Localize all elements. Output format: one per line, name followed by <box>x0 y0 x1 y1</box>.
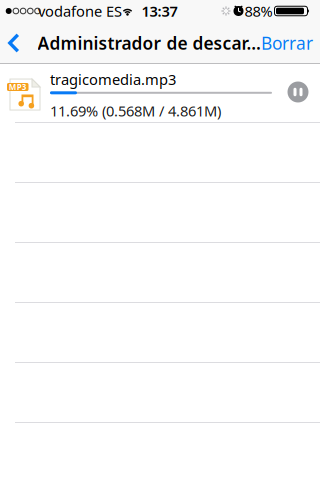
staticText: Borrar <box>261 31 313 54</box>
staticText: Administrador de descar… <box>37 31 260 54</box>
staticText: MP3 <box>9 82 27 92</box>
button[interactable]: Atrás <box>1 25 27 61</box>
staticText: 11.69% (0.568M / 4.861M) <box>50 101 221 120</box>
button[interactable]: MP3 <box>0 64 320 123</box>
staticText: tragicomedia.mp3 <box>50 69 176 89</box>
staticText: vodafone ES <box>38 1 122 21</box>
button[interactable]: Borrar <box>261 25 313 61</box>
button[interactable]: Pausar descarga <box>287 81 308 102</box>
staticText: 13:37 <box>141 1 177 21</box>
staticText: 88% <box>244 1 272 21</box>
